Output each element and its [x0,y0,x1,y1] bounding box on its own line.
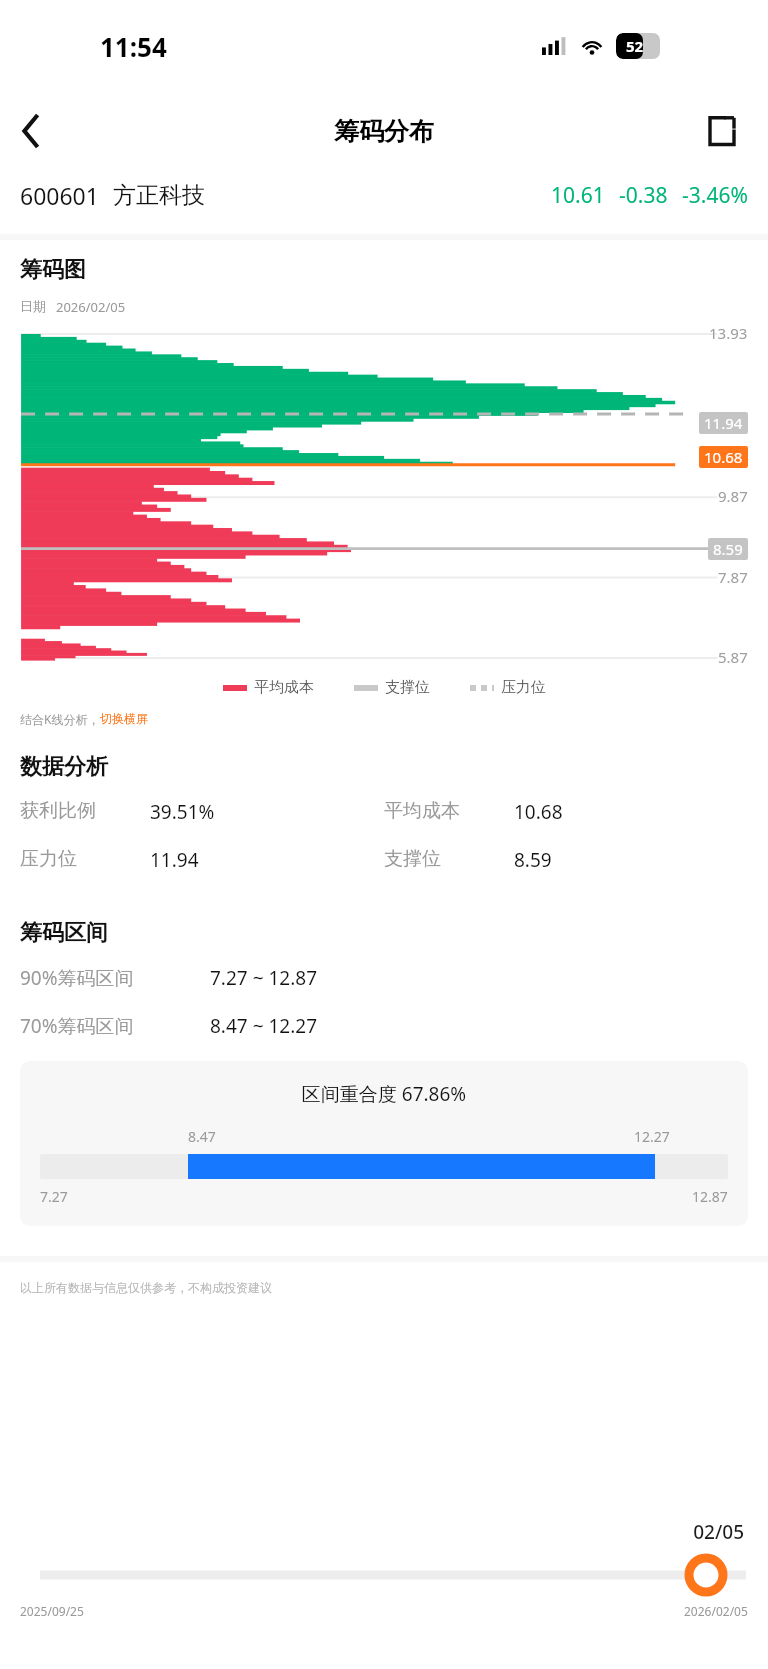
staticText: 8.59 [514,847,552,873]
staticText: 筹码图 [20,256,86,284]
staticText: 52 [626,36,644,56]
staticText: 结合K线分析， [20,711,100,727]
staticText: 支撑位 [384,847,441,871]
staticText: 8.59 [713,539,743,559]
staticText: 70%筹码区间 [20,1013,134,1039]
staticText: -3.46% [682,181,748,210]
staticText: 90%筹码区间 [20,965,134,991]
staticText: 平均成本 [384,799,460,823]
staticText: 10.61 [551,181,605,210]
staticText: 筹码区间 [20,919,108,947]
staticText: 7.87 [718,567,748,587]
staticText: 39.51% [150,799,215,825]
staticText: -0.38 [619,181,668,210]
staticText: 筹码分布 [334,116,434,147]
staticText: 8.47 ~ 12.27 [210,1013,318,1039]
staticText: 日期 [20,298,46,314]
staticText: 10.68 [514,799,563,825]
staticText: 600601 [20,180,99,211]
staticText: 切换横屏 [100,711,148,726]
staticText: 11.94 [704,413,743,433]
staticText: 2026/02/05 [56,298,126,316]
button[interactable]: Back [0,99,64,163]
staticText: 9.87 [718,486,748,506]
staticText: 压力位 [501,678,546,697]
button[interactable]: Date slider [0,1557,768,1593]
staticText: 5.87 [718,647,748,667]
staticText: 12.87 [692,1187,728,1206]
staticText: 2025/09/25 [20,1603,84,1619]
staticText: 压力位 [20,847,77,871]
staticText: 12.27 [634,1127,670,1146]
staticText: 7.27 [40,1187,68,1206]
staticText: 2026/02/05 [684,1603,748,1619]
staticText: 区间重合度 67.86% [40,1081,728,1107]
staticText: 获利比例 [20,799,96,823]
staticText: 11:54 [100,29,167,64]
staticText: 支撑位 [385,678,430,697]
staticText: 11.94 [150,847,199,873]
staticText: 7.27 ~ 12.87 [210,965,318,991]
staticText: 02/05 [0,1519,744,1545]
button[interactable]: Share [692,101,752,161]
staticText: 8.47 [188,1127,216,1146]
staticText: 10.68 [704,447,743,467]
staticText: 以上所有数据与信息仅供参考，不构成投资建议 [20,1280,272,1295]
staticText: 方正科技 [113,181,205,210]
staticText: 数据分析 [20,753,108,781]
staticText: 13.93 [709,323,748,343]
staticText: 平均成本 [254,678,314,697]
button[interactable]: 结合K线分析， [20,711,148,727]
